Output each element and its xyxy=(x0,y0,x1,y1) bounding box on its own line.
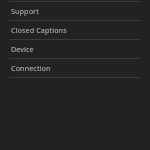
staticText: Support xyxy=(11,6,39,16)
staticText: Device xyxy=(11,44,34,54)
button[interactable]: Support xyxy=(0,2,150,20)
staticText: Closed Captions xyxy=(11,25,67,35)
staticText: Connection xyxy=(11,63,51,73)
button[interactable]: Device xyxy=(0,40,150,58)
button[interactable]: Closed Captions xyxy=(0,21,150,39)
button[interactable]: Connection xyxy=(0,59,150,77)
